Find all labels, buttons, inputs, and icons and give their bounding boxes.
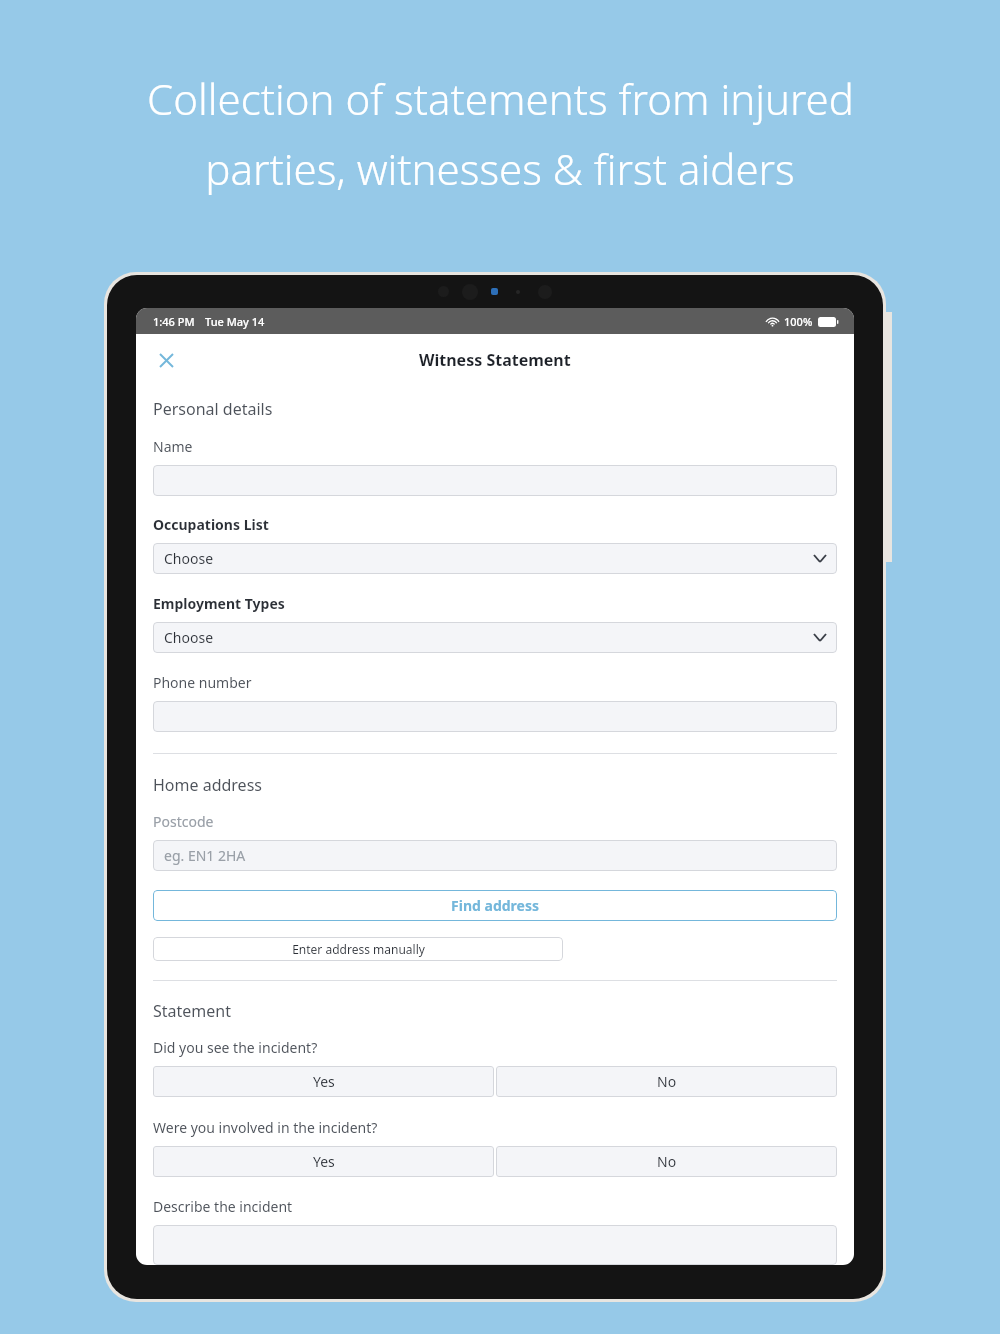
staticText: Statement [153, 1000, 231, 1022]
staticText: Describe the incident [153, 1197, 293, 1216]
staticText: Were you involved in the incident? [153, 1118, 378, 1137]
staticText: Tue May 14 [205, 314, 265, 329]
staticText: Did you see the incident? [153, 1038, 318, 1057]
staticText: No [657, 1152, 677, 1171]
button[interactable]: Choose [153, 543, 837, 574]
staticText: Name [153, 437, 193, 456]
button[interactable] [153, 701, 837, 732]
button[interactable]: Yes [153, 1146, 494, 1177]
staticText: parties, witnesses & first aiders [205, 140, 795, 197]
staticText: 1:46 PM [153, 314, 195, 329]
staticText: Occupations List [153, 515, 269, 534]
button[interactable] [153, 1225, 837, 1265]
staticText: Home address [153, 774, 262, 796]
staticText: Choose [164, 628, 214, 647]
staticText: No [657, 1072, 677, 1091]
button[interactable]: Yes [153, 1066, 494, 1097]
button[interactable]: Find address [153, 890, 837, 921]
staticText: Find address [451, 896, 539, 915]
button[interactable]: No [496, 1146, 837, 1177]
button[interactable] [153, 465, 837, 496]
staticText: Collection of statements from injured [147, 70, 854, 127]
button[interactable]: No [496, 1066, 837, 1097]
staticText: Postcode [153, 812, 214, 831]
button[interactable]: Choose [153, 622, 837, 653]
staticText: Phone number [153, 673, 252, 692]
staticText: Witness Statement [419, 349, 571, 371]
staticText: Personal details [153, 398, 273, 420]
staticText: Yes [313, 1072, 335, 1091]
staticText: eg. EN1 2HA [164, 846, 246, 865]
button[interactable]: Close [153, 347, 179, 373]
button[interactable]: Enter address manually [153, 937, 563, 961]
staticText: Employment Types [153, 594, 285, 613]
staticText: Choose [164, 549, 214, 568]
staticText: Enter address manually [292, 941, 425, 957]
staticText: 100% [784, 314, 813, 329]
staticText: Yes [313, 1152, 335, 1171]
button[interactable]: eg. EN1 2HA [153, 840, 837, 871]
